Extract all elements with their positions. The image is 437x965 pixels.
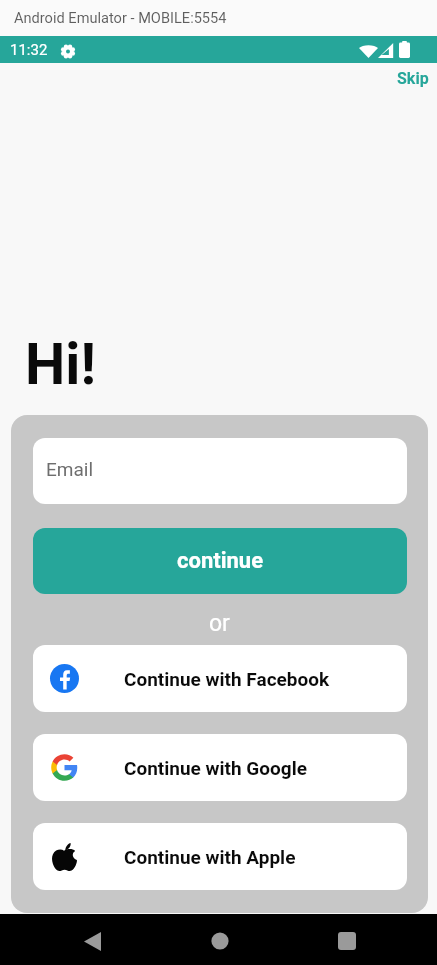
staticText: 11:32 <box>10 41 48 59</box>
staticText: or <box>209 610 230 637</box>
button[interactable]: Home <box>196 917 244 965</box>
button[interactable]: Skip <box>385 57 437 100</box>
staticText: Continue with Apple <box>124 846 296 868</box>
staticText: continue <box>177 548 264 574</box>
button[interactable]: Continue with Apple <box>33 823 407 890</box>
staticText: Continue with Facebook <box>124 668 330 690</box>
staticText: Hi! <box>25 331 96 398</box>
button[interactable]: Continue with Google <box>33 734 407 801</box>
staticText: Skip <box>397 69 429 88</box>
staticText: Continue with Google <box>124 757 307 779</box>
staticText: Email <box>46 458 94 480</box>
button[interactable]: Email <box>33 438 407 504</box>
button[interactable]: Continue with Facebook <box>33 645 407 712</box>
button[interactable]: Back <box>68 917 116 965</box>
button[interactable]: continue <box>33 528 407 594</box>
button[interactable]: Recent apps <box>323 917 371 965</box>
staticText: Android Emulator - MOBILE:5554 <box>14 9 227 26</box>
